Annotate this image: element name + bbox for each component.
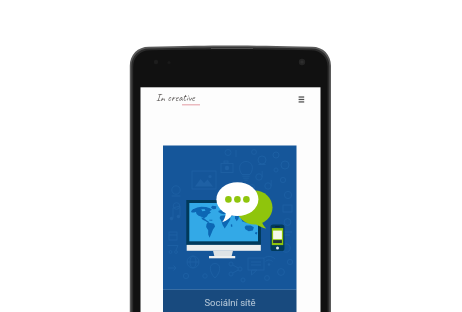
button[interactable]: Open menu bbox=[294, 92, 310, 108]
button[interactable]: In creative bbox=[156, 91, 195, 104]
button[interactable]: Sociální sítě bbox=[163, 145, 297, 312]
staticText: In creative bbox=[156, 91, 195, 104]
staticText: Sociální sítě bbox=[163, 297, 297, 308]
